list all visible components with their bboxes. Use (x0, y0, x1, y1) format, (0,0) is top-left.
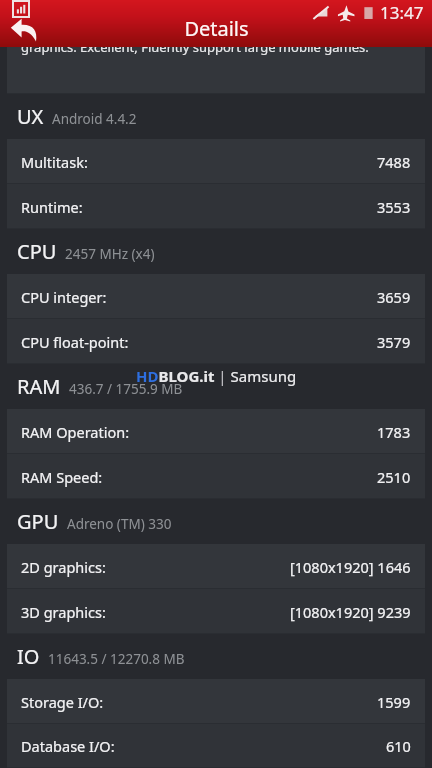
staticText: 11643.5 / 12270.8 MB (48, 650, 185, 668)
staticText: RAM Operation: (21, 422, 130, 442)
staticText: 610 (386, 736, 411, 756)
staticText: 2D graphics: (21, 557, 106, 577)
button[interactable]: Back (0, 5, 48, 52)
button[interactable]: 2D graphics: (7, 544, 425, 589)
button[interactable]: Multitask: (7, 139, 425, 184)
staticText: CPU (17, 238, 57, 265)
staticText: Database I/O: (21, 736, 115, 756)
staticText: 1783 (377, 422, 411, 442)
staticText: Multitask: (21, 152, 88, 172)
staticText: IO (17, 643, 40, 670)
staticText: RAM (17, 373, 61, 400)
staticText: [1080x1920] 9239 (290, 602, 411, 622)
staticText: 2510 (377, 467, 411, 487)
staticText: 13:47 (380, 1, 424, 24)
staticText: graphics. Excellent, Fluently support la… (21, 38, 369, 56)
button[interactable]: CPU integer: (7, 274, 425, 319)
button[interactable]: RAM Operation: (7, 409, 425, 454)
button[interactable]: Storage I/O: (7, 679, 425, 724)
staticText: Android 4.4.2 (52, 110, 137, 128)
button[interactable]: Runtime: (7, 184, 425, 229)
button[interactable]: Database I/O: (7, 724, 425, 768)
button[interactable]: CPU float-point: (7, 319, 425, 364)
staticText: 2457 MHz (x4) (65, 245, 155, 263)
staticText: 3D graphics: (21, 602, 106, 622)
button[interactable]: 3D graphics: (7, 589, 425, 634)
button[interactable]: RAM Speed: (7, 454, 425, 499)
staticText: [1080x1920] 1646 (290, 557, 411, 577)
staticText: 3659 (377, 287, 411, 307)
staticText: Runtime: (21, 197, 83, 217)
staticText: CPU float-point: (21, 332, 129, 352)
staticText: Storage I/O: (21, 692, 104, 712)
staticText: 3553 (377, 197, 411, 217)
staticText: 3579 (377, 332, 411, 352)
staticText: 7488 (377, 152, 411, 172)
staticText: HDBLOG.it | Samsung (136, 366, 297, 386)
staticText: 1599 (377, 692, 411, 712)
staticText: Adreno (TM) 330 (67, 515, 172, 533)
staticText: 436.7 / 1755.9 MB (69, 380, 183, 398)
staticText: CPU integer: (21, 287, 107, 307)
staticText: UX (17, 103, 44, 130)
staticText: GPU (17, 508, 59, 535)
staticText: RAM Speed: (21, 467, 103, 487)
staticText: Details (184, 15, 249, 42)
